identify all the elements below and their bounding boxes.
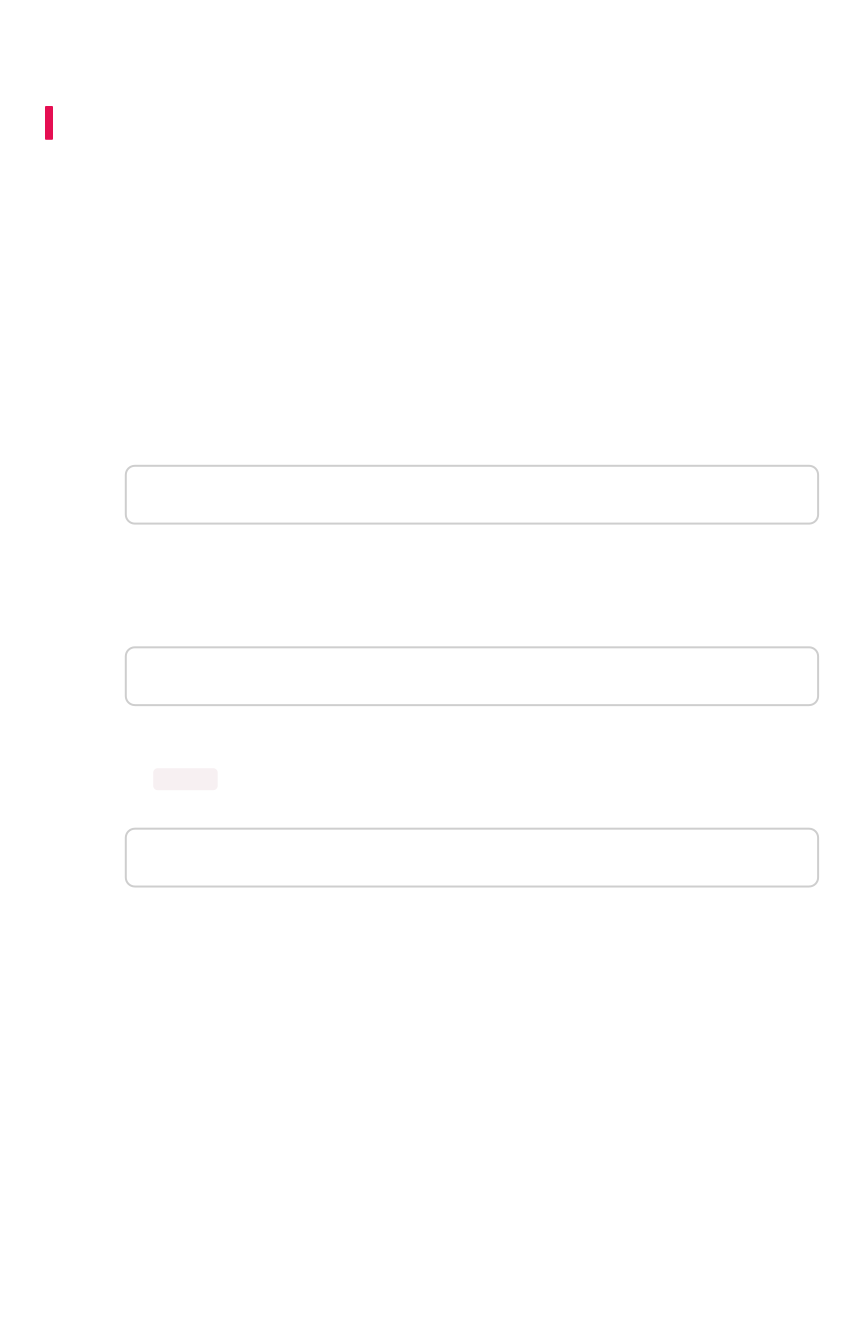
button[interactable]: Third field: [126, 829, 818, 886]
button[interactable]: Title: [45, 106, 53, 140]
button[interactable]: First field: [126, 466, 818, 524]
button[interactable]: Second field: [126, 647, 818, 705]
